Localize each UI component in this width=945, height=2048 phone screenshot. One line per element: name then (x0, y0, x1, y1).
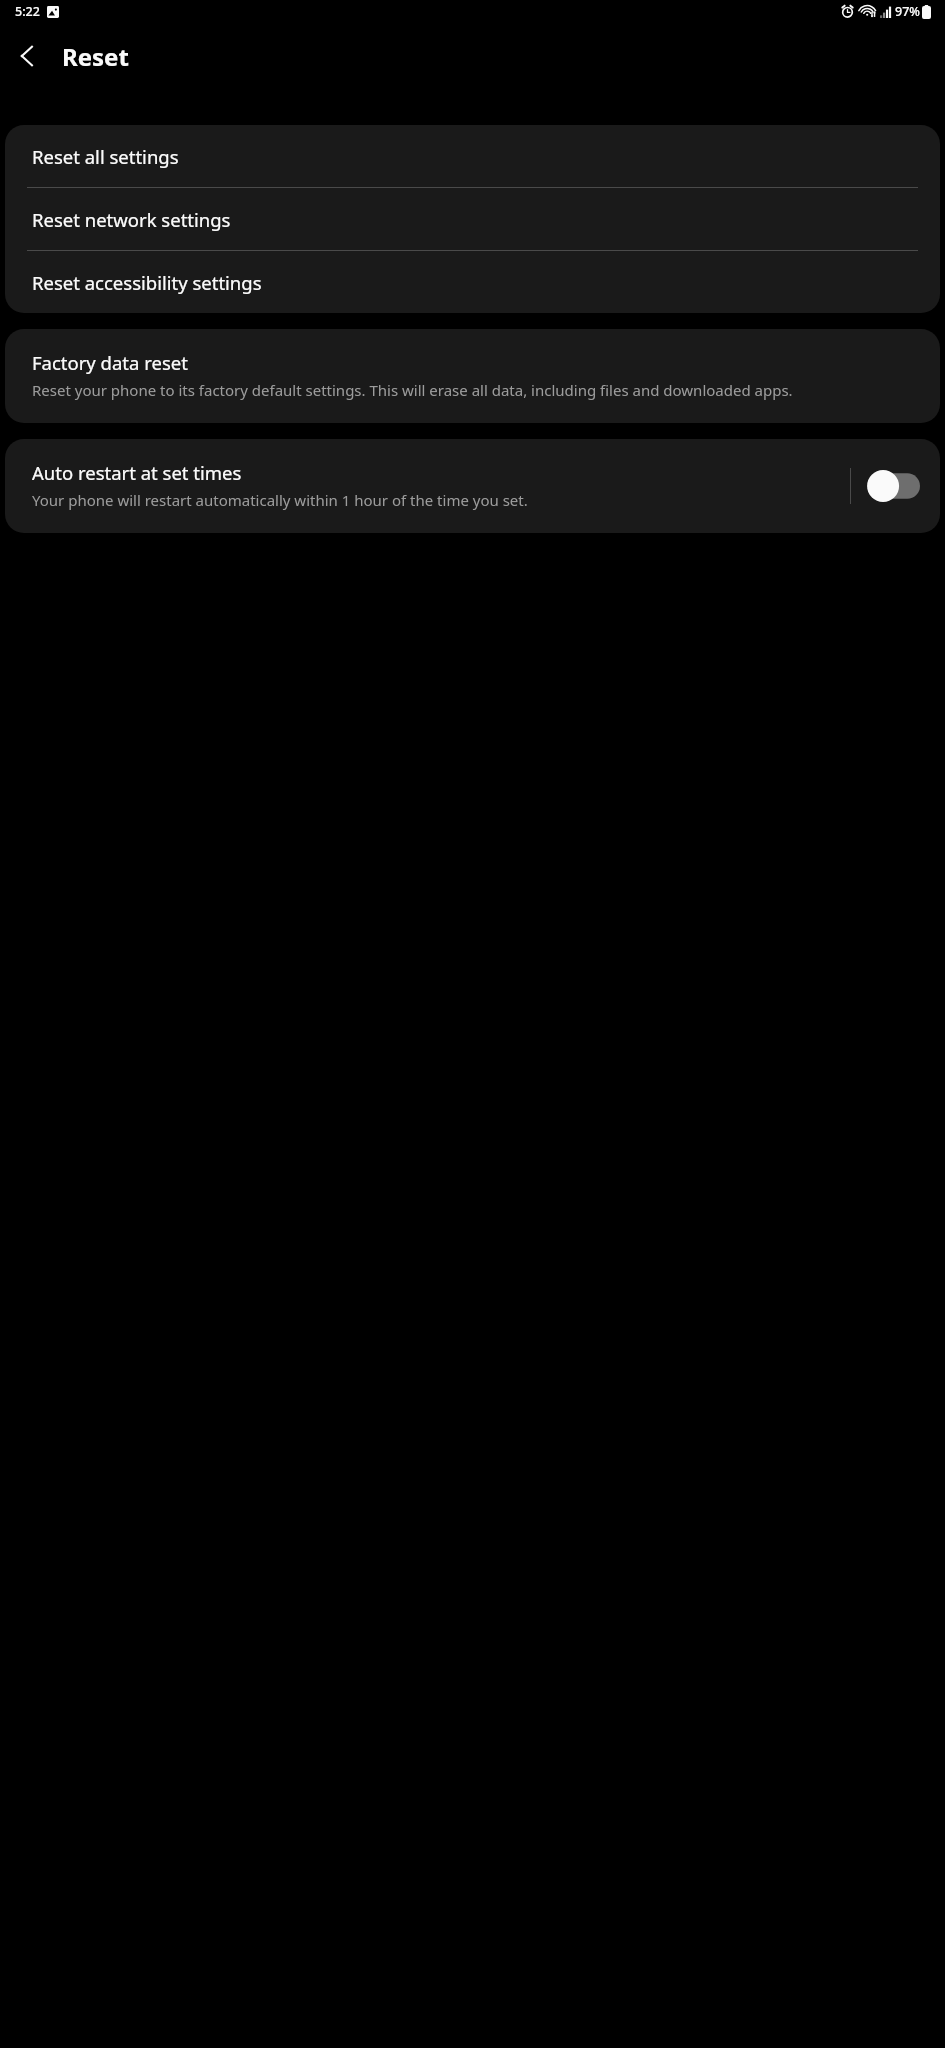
staticText: Reset your phone to its factory default … (32, 380, 793, 400)
button[interactable]: Reset all settings (5, 125, 940, 187)
button[interactable]: Reset accessibility settings (5, 251, 940, 313)
staticText: Auto restart at set times (32, 460, 242, 485)
staticText: Factory data reset (32, 350, 188, 375)
staticText: Reset network settings (32, 207, 231, 232)
staticText: Reset (62, 40, 129, 73)
button[interactable]: Reset network settings (5, 188, 940, 250)
staticText: Reset accessibility settings (32, 270, 262, 295)
button[interactable]: Back (6, 34, 50, 78)
button[interactable]: Auto restart at set times (5, 439, 850, 533)
staticText: 97% (895, 3, 920, 20)
button[interactable]: Auto restart toggle (864, 463, 922, 509)
button[interactable]: Factory data reset (5, 329, 940, 423)
staticText: 5:22 (15, 3, 40, 20)
staticText: Reset all settings (32, 144, 179, 169)
staticText: Your phone will restart automatically wi… (32, 490, 528, 510)
